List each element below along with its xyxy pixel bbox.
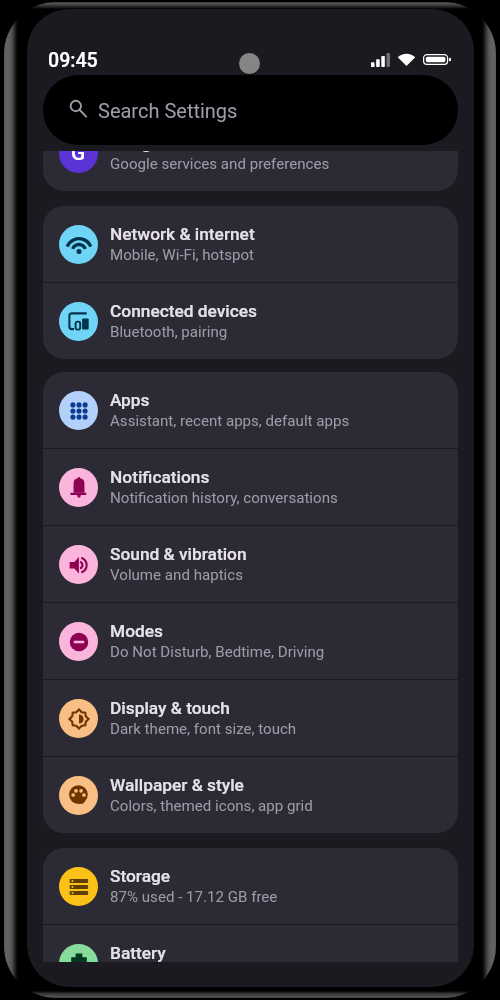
button[interactable]: Search	[43, 75, 458, 145]
staticText: Notification history, conversations	[110, 489, 338, 507]
staticText: Wallpaper & style	[110, 775, 244, 795]
button[interactable]: Battery	[43, 925, 458, 962]
staticText: Assistant, recent apps, default apps	[110, 412, 350, 430]
staticText: Colors, themed icons, app grid	[110, 797, 313, 815]
other: Search	[70, 100, 87, 118]
staticText: Network & internet	[110, 224, 255, 244]
button[interactable]: Display & touch	[43, 680, 458, 756]
staticText: Storage	[110, 866, 171, 886]
staticText: Display & touch	[110, 698, 230, 718]
staticText: Google	[110, 151, 165, 153]
staticText: Modes	[110, 621, 163, 641]
staticText: Apps	[110, 390, 150, 410]
staticText: G	[71, 151, 86, 166]
button[interactable]: Modes	[43, 603, 458, 679]
staticText: Bluetooth, pairing	[110, 323, 228, 341]
staticText: Battery	[110, 943, 166, 962]
staticText: Sound & vibration	[110, 544, 247, 564]
button[interactable]: Network & internet	[43, 206, 458, 282]
button[interactable]: Connected devices	[43, 283, 458, 359]
staticText: Mobile, Wi-Fi, hotspot	[110, 246, 254, 264]
staticText: Do Not Disturb, Bedtime, Driving	[110, 643, 325, 661]
button[interactable]: Apps	[43, 372, 458, 448]
staticText: Notifications	[110, 467, 210, 487]
staticText: Connected devices	[110, 301, 258, 321]
staticText: Volume and haptics	[110, 566, 243, 584]
button[interactable]: Sound & vibration	[43, 526, 458, 602]
button[interactable]: Notifications	[43, 449, 458, 525]
staticText: Dark theme, font size, touch	[110, 720, 297, 738]
staticText: Search Settings	[98, 99, 238, 122]
button[interactable]: Storage	[43, 848, 458, 924]
staticText: Google services and preferences	[110, 155, 330, 173]
staticText: 87% used - 17.12 GB free	[110, 888, 278, 906]
button[interactable]: Wallpaper & style	[43, 757, 458, 833]
staticText: 09:45	[48, 49, 98, 72]
button[interactable]: G	[43, 151, 458, 191]
